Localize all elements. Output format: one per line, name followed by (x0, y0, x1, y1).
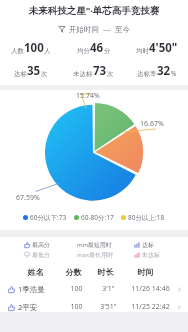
staticText: 100 (24, 40, 44, 56)
staticText: 次 (41, 70, 48, 78)
staticText: 3'1" (93, 284, 124, 294)
staticText: 60分以下:73 (30, 213, 67, 222)
other: Filter (58, 25, 66, 33)
button[interactable]: min最短用时 (77, 241, 112, 249)
staticText: 100 (60, 284, 93, 294)
staticText: 46 (90, 40, 104, 56)
staticText: max最长用时 (77, 251, 114, 259)
button[interactable]: 60分以下:73 (23, 213, 67, 222)
button[interactable]: 80分以上:18 (121, 213, 165, 222)
button[interactable]: Like (0, 302, 188, 312)
staticText: 3'51" (93, 302, 124, 312)
staticText: 11/26 14:46 (124, 284, 177, 294)
other: Like (8, 304, 15, 311)
staticText: 15.74% (76, 91, 100, 101)
button[interactable]: 最低分 (24, 251, 50, 259)
staticText: 100 (60, 302, 93, 312)
staticText: 时长 (90, 267, 121, 277)
staticText: 最低分 (32, 251, 50, 259)
staticText: 时间 (121, 267, 170, 277)
staticText: 未达标 (73, 70, 93, 78)
button[interactable]: 60-80分:17 (74, 213, 114, 222)
staticText: 67.59% (16, 193, 40, 203)
staticText: 1季浩曼 (18, 284, 60, 294)
staticText: 4'50" (149, 40, 178, 56)
staticText: 均时 (136, 47, 149, 55)
other: Like (8, 286, 15, 293)
staticText: 2平安 (18, 302, 60, 312)
staticText: 人数 (11, 47, 24, 55)
staticText: 分 (104, 47, 111, 55)
staticText: 达标率 (137, 70, 157, 78)
staticText: 分数 (57, 267, 90, 277)
button[interactable]: 达标 (134, 241, 154, 249)
button[interactable]: Like (0, 284, 188, 294)
staticText: 均分 (77, 47, 90, 55)
staticText: 35 (27, 63, 41, 79)
staticText: 最高分 (32, 241, 50, 249)
staticText: — (103, 24, 111, 34)
staticText: 至今 (115, 25, 130, 34)
staticText: 达标 (142, 241, 154, 249)
staticText: 16.67% (140, 119, 164, 129)
button[interactable]: 未达标 (134, 251, 160, 259)
staticText: 32 (157, 63, 171, 79)
staticText: 次 (107, 70, 114, 78)
staticText: 姓名 (14, 267, 57, 277)
staticText: 60-80分:17 (81, 213, 114, 222)
staticText: 未来科技之星"·单芯高手竞技赛 (8, 4, 180, 17)
button[interactable]: max最长用时 (77, 251, 114, 259)
staticText: % (171, 69, 177, 78)
staticText: 未达标 (142, 251, 160, 259)
staticText: 人 (44, 47, 51, 55)
staticText: 开始时间 (69, 25, 99, 34)
staticText: 80分以上:18 (128, 213, 165, 222)
staticText: 73 (93, 63, 107, 79)
button[interactable]: 最高分 (24, 241, 50, 249)
staticText: min最短用时 (77, 241, 112, 249)
button[interactable]: Filter (0, 23, 188, 35)
staticText: 11/25 22:42 (124, 302, 177, 312)
staticText: 达标 (14, 70, 27, 78)
